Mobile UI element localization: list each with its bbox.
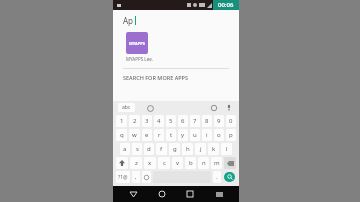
- button[interactable]: SEARCH FOR MORE APPS: [113, 69, 239, 85]
- button[interactable]: 5: [166, 115, 176, 127]
- staticText: p: [229, 131, 233, 139]
- staticText: o: [217, 131, 221, 139]
- button[interactable]: z: [130, 157, 142, 169]
- button[interactable]: Backspace: [224, 157, 236, 169]
- button[interactable]: Settings: [209, 103, 219, 113]
- button[interactable]: b: [185, 157, 196, 169]
- staticText: b: [189, 159, 193, 167]
- staticText: a: [123, 145, 127, 153]
- staticText: abc: [122, 104, 131, 111]
- staticText: ,: [135, 173, 137, 181]
- staticText: 0: [229, 117, 233, 125]
- button[interactable]: l: [221, 143, 232, 155]
- staticText: r: [158, 131, 161, 139]
- staticText: Ap: [123, 15, 134, 26]
- staticText: t: [170, 131, 173, 139]
- staticText: y: [181, 131, 185, 139]
- staticText: .: [216, 173, 218, 181]
- staticText: 8: [205, 117, 209, 125]
- button[interactable]: j: [195, 143, 206, 155]
- button[interactable]: abc: [118, 103, 135, 112]
- button[interactable]: s: [132, 143, 142, 155]
- button[interactable]: Recents: [181, 186, 199, 202]
- button[interactable]: t: [166, 129, 176, 141]
- button[interactable]: Emoji: [145, 103, 155, 113]
- staticText: x: [148, 159, 152, 167]
- button[interactable]: w: [129, 129, 140, 141]
- staticText: i: [206, 131, 208, 139]
- button[interactable]: c: [158, 157, 170, 169]
- button[interactable]: 0: [226, 115, 236, 127]
- button[interactable]: Back: [124, 186, 142, 202]
- button[interactable]: d: [144, 143, 154, 155]
- staticText: ?1@: [118, 174, 128, 181]
- button[interactable]: a: [120, 143, 130, 155]
- button[interactable]: v: [172, 157, 183, 169]
- button[interactable]: o: [214, 129, 224, 141]
- staticText: w: [132, 131, 137, 139]
- button[interactable]: Language: [142, 171, 151, 183]
- button[interactable]: n: [198, 157, 209, 169]
- staticText: 3: [145, 117, 149, 125]
- button[interactable]: f: [156, 143, 167, 155]
- staticText: u: [193, 131, 197, 139]
- staticText: MYAPPS Lee.: [126, 56, 153, 62]
- staticText: e: [145, 131, 149, 139]
- staticText: v: [176, 159, 180, 167]
- staticText: 9: [217, 117, 221, 125]
- staticText: h: [186, 145, 190, 153]
- button[interactable]: 9: [214, 115, 224, 127]
- staticText: MYAPPS: [129, 41, 145, 46]
- staticText: 00:06: [218, 1, 234, 9]
- staticText: m: [214, 159, 220, 167]
- staticText: n: [202, 159, 206, 167]
- button[interactable]: u: [190, 129, 200, 141]
- staticText: g: [173, 145, 177, 153]
- staticText: d: [147, 145, 151, 153]
- button[interactable]: x: [144, 157, 156, 169]
- button[interactable]: e: [142, 129, 152, 141]
- button[interactable]: Hide keyboard: [210, 186, 228, 202]
- button[interactable]: Shift: [116, 157, 128, 169]
- button[interactable]: r: [154, 129, 164, 141]
- staticText: l: [226, 145, 228, 153]
- button[interactable]: Ap: [113, 10, 239, 30]
- button[interactable]: 2: [129, 115, 140, 127]
- staticText: 5: [169, 117, 173, 125]
- button[interactable]: i: [202, 129, 212, 141]
- button[interactable]: ,: [132, 171, 140, 183]
- button[interactable]: h: [182, 143, 193, 155]
- button[interactable]: Voice input: [224, 103, 234, 113]
- button[interactable]: Search: [224, 172, 235, 182]
- staticText: q: [120, 131, 124, 139]
- button[interactable]: 8: [202, 115, 212, 127]
- button[interactable]: k: [208, 143, 219, 155]
- button[interactable]: p: [226, 129, 236, 141]
- staticText: 4: [157, 117, 161, 125]
- button[interactable]: g: [169, 143, 180, 155]
- button[interactable]: 6: [178, 115, 188, 127]
- staticText: s: [136, 145, 139, 153]
- button[interactable]: 4: [154, 115, 164, 127]
- button[interactable]: MYAPPS: [126, 32, 160, 62]
- button[interactable]: m: [211, 157, 222, 169]
- button[interactable]: .: [213, 171, 221, 183]
- button[interactable]: 7: [190, 115, 200, 127]
- button[interactable]: 1: [116, 115, 127, 127]
- staticText: 2: [133, 117, 137, 125]
- staticText: j: [200, 145, 202, 153]
- staticText: c: [163, 159, 166, 167]
- staticText: 6: [181, 117, 185, 125]
- button[interactable]: Home: [153, 186, 171, 202]
- staticText: f: [160, 145, 163, 153]
- staticText: SEARCH FOR MORE APPS: [123, 74, 188, 81]
- button[interactable]: ?1@: [116, 171, 130, 183]
- button[interactable]: y: [178, 129, 188, 141]
- staticText: z: [135, 159, 138, 167]
- staticText: 7: [193, 117, 197, 125]
- button[interactable]: q: [116, 129, 127, 141]
- button[interactable]: 3: [142, 115, 152, 127]
- staticText: 1: [120, 117, 124, 125]
- staticText: k: [212, 145, 216, 153]
